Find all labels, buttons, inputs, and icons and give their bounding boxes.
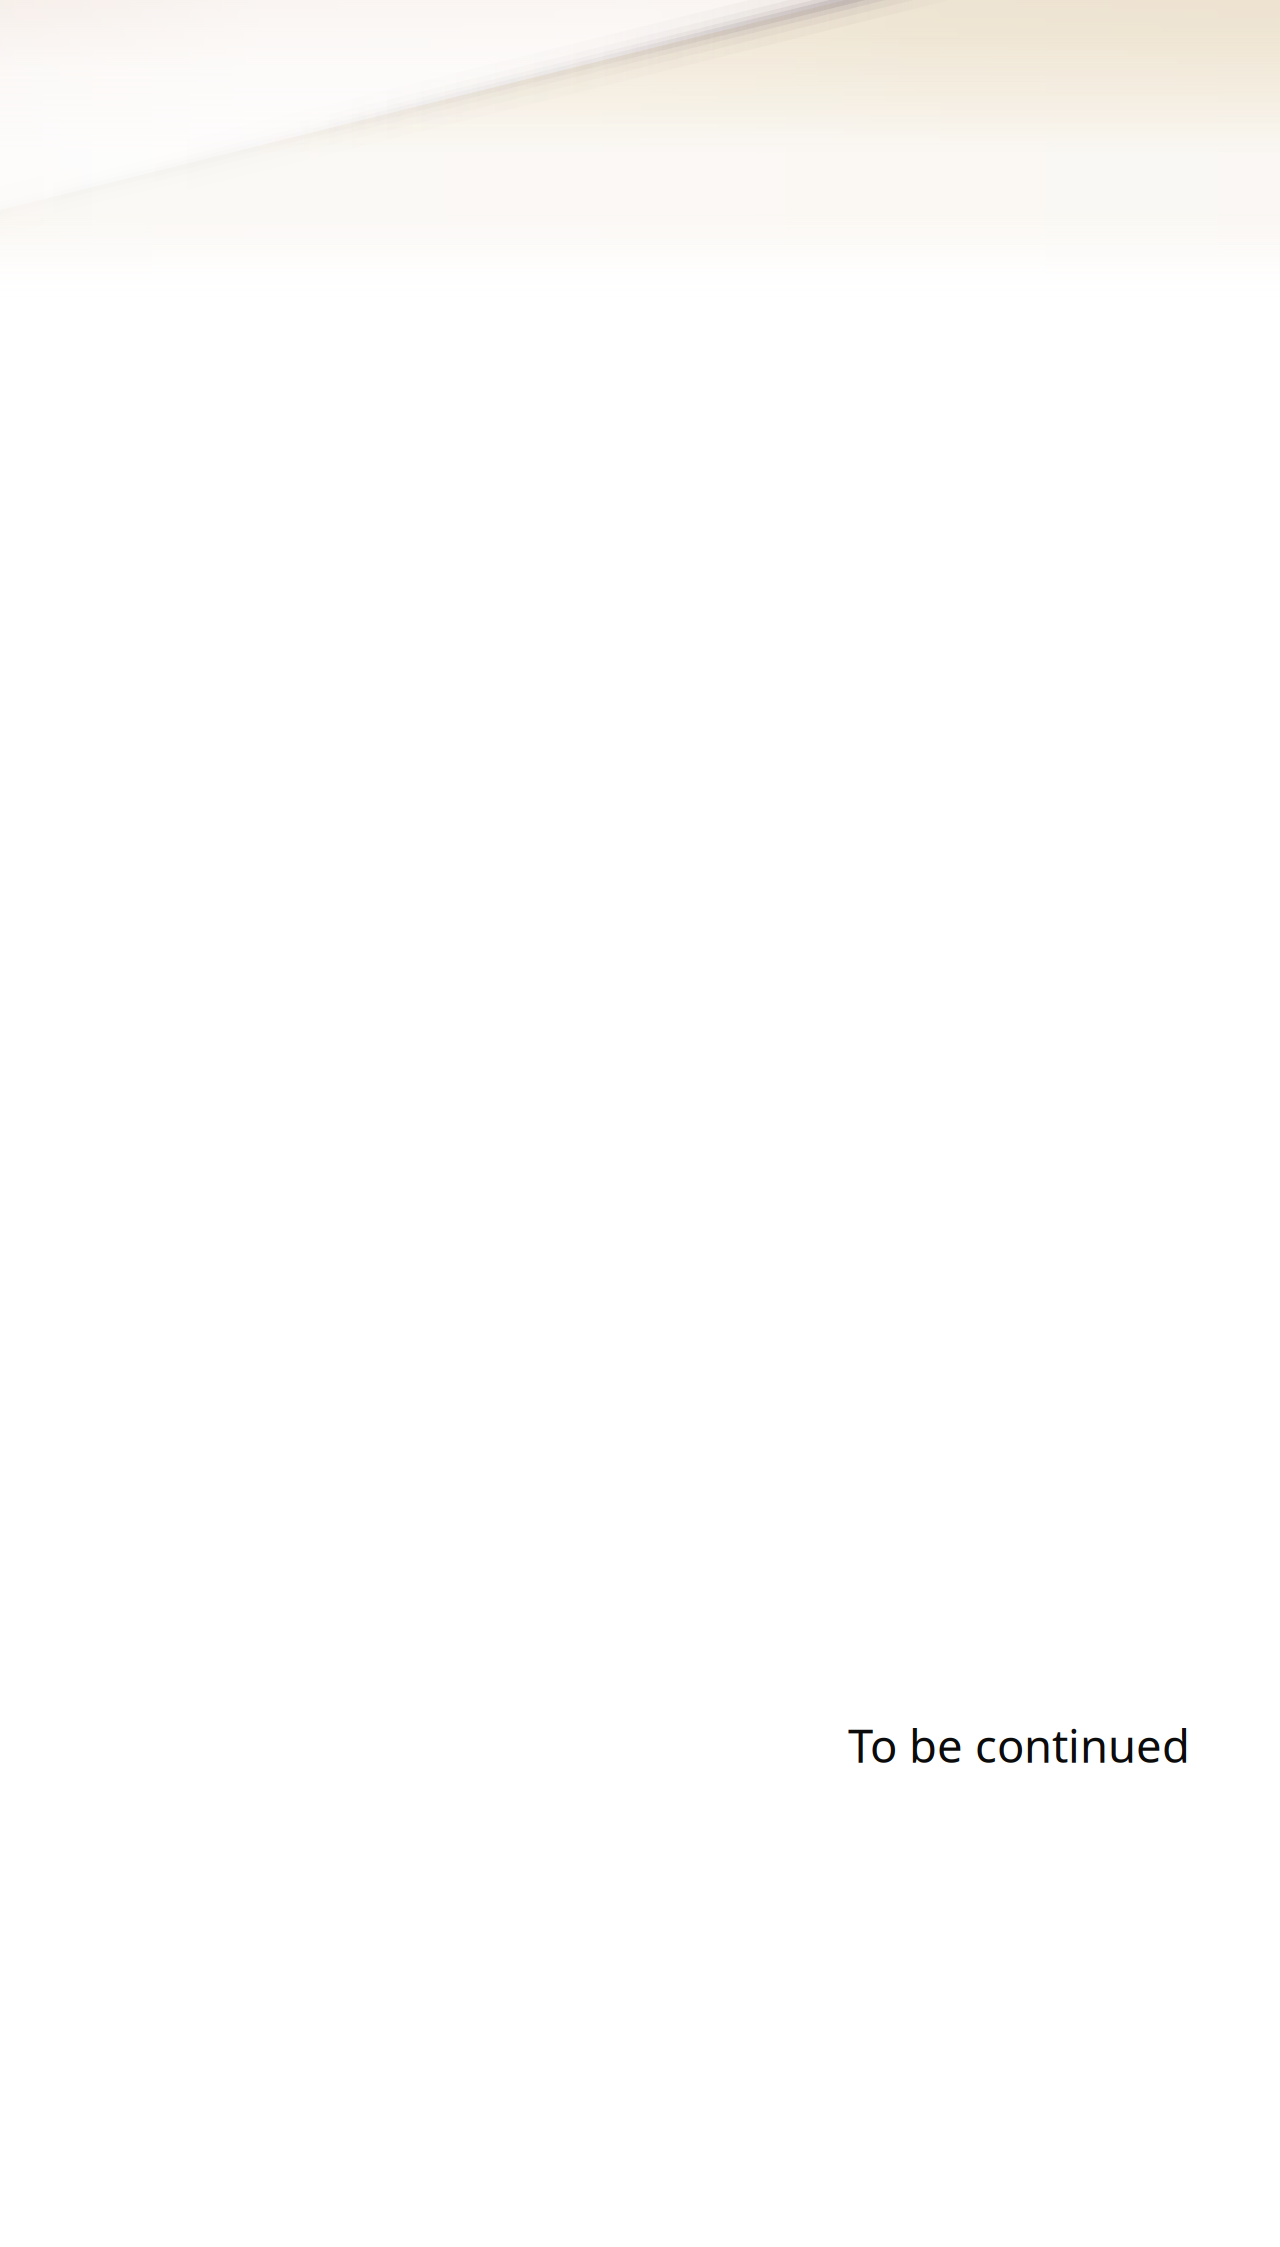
staticText: To be continued <box>848 1715 1190 1775</box>
